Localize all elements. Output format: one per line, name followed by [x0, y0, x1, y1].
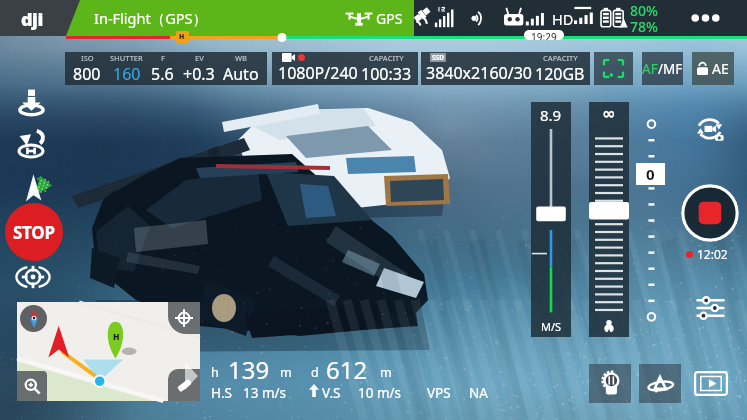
staticText: m [380, 364, 392, 381]
button[interactable]: Focus area [594, 52, 633, 85]
staticText: 19:29 [531, 30, 557, 40]
button[interactable]: AE [692, 52, 734, 85]
button[interactable]: Land [13, 88, 49, 118]
staticText: 78% [630, 17, 658, 36]
button[interactable]: ISO [73, 52, 259, 85]
button[interactable]: Target lock [13, 263, 53, 291]
button[interactable]: Record [681, 184, 739, 242]
button[interactable]: 1080P/240 [278, 52, 412, 85]
button[interactable]: Exposure metering [589, 364, 631, 403]
staticText: SHUTTER [110, 53, 143, 63]
staticText: +0.3 [183, 63, 215, 85]
button[interactable]: 0 [646, 164, 655, 184]
button[interactable]: Playback [694, 371, 728, 396]
staticText: 80% [630, 1, 658, 20]
staticText: 3840x2160/30 [426, 62, 532, 84]
button[interactable]: ∞ [589, 102, 629, 337]
staticText: V.S [322, 384, 341, 402]
staticText: m [280, 364, 292, 381]
button[interactable]: Compass [20, 305, 47, 332]
staticText: M/S [541, 319, 562, 334]
staticText: 8.9 [540, 105, 562, 125]
button[interactable]: More options [686, 3, 724, 33]
staticText: CAPACITY [543, 53, 578, 63]
staticText: AF [642, 60, 658, 78]
staticText: CAPACITY [369, 53, 404, 63]
staticText: ISO [81, 53, 94, 63]
button[interactable]: Camera settings [694, 293, 726, 323]
button[interactable]: H [17, 302, 200, 401]
staticText: STOP [13, 221, 55, 244]
staticText: 10 m/s [358, 384, 402, 402]
staticText: AE [712, 59, 729, 78]
button[interactable]: AF [642, 52, 683, 85]
staticText: 0 [646, 164, 655, 184]
staticText: NA [469, 384, 488, 402]
button[interactable]: Return to home [13, 128, 49, 162]
staticText: H [179, 32, 185, 40]
button[interactable]: Zoom in [17, 371, 47, 401]
staticText: H.S [211, 384, 233, 402]
button[interactable]: STOP [5, 203, 63, 261]
staticText: H [113, 331, 120, 343]
staticText: F [161, 53, 165, 63]
staticText: Auto [223, 63, 259, 85]
staticText: 120GB [535, 63, 585, 85]
staticText: In-Flight（GPS） [94, 8, 207, 28]
staticText: 800 [73, 63, 101, 85]
staticText: 612 [326, 353, 368, 386]
staticText: EV [195, 53, 204, 63]
staticText: 5.6 [151, 63, 174, 85]
staticText: SSD [432, 53, 444, 62]
button[interactable]: Panorama [639, 364, 681, 403]
button[interactable]: 8.9 [531, 102, 571, 337]
button[interactable]: Recenter map [168, 302, 200, 334]
staticText: 13 m/s [243, 384, 287, 402]
staticText: d [311, 364, 319, 381]
staticText: 12:02 [697, 246, 728, 262]
button[interactable]: SSD [426, 52, 585, 85]
staticText: VPS [427, 384, 451, 402]
staticText: 100:33 [361, 63, 412, 85]
button[interactable]: Switch camera mode [692, 114, 730, 146]
staticText: HD [552, 9, 574, 29]
staticText: dji [21, 7, 43, 32]
staticText: GPS [376, 9, 403, 28]
staticText: h [211, 364, 219, 381]
staticText: 139 [228, 353, 270, 386]
staticText: WB [235, 53, 247, 63]
staticText: 1080P/240 [278, 62, 358, 84]
staticText: /MF [658, 60, 683, 78]
staticText: ∞ [602, 104, 616, 123]
staticText: 160 [113, 63, 141, 85]
button[interactable]: Clear flight track [168, 369, 200, 401]
